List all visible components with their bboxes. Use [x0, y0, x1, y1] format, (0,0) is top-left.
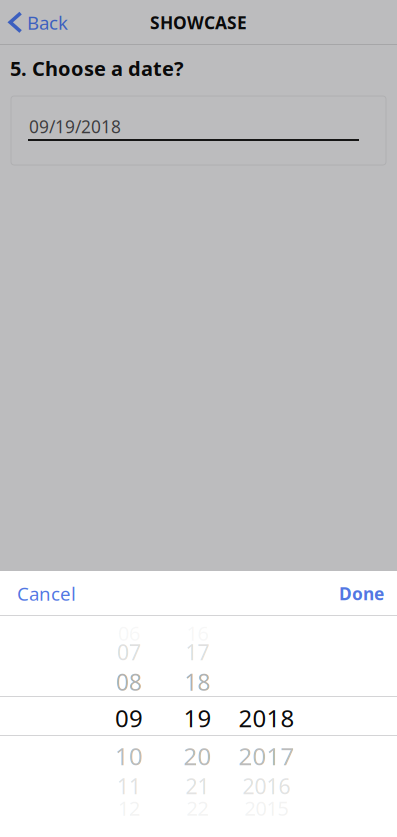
staticText: 16: [186, 620, 208, 646]
button[interactable]: Year: [232, 616, 301, 837]
staticText: 2015: [244, 795, 288, 821]
staticText: Done: [339, 582, 384, 605]
staticText: 18: [184, 667, 210, 697]
staticText: 09: [115, 702, 143, 734]
staticText: 06: [118, 620, 140, 646]
staticText: 08: [116, 667, 142, 697]
staticText: 2018: [238, 702, 294, 734]
staticText: 09/19/2018: [29, 115, 121, 138]
staticText: 21: [185, 772, 209, 800]
staticText: 11: [117, 772, 141, 800]
staticText: 07: [117, 638, 141, 666]
button[interactable]: Month: [95, 616, 163, 837]
button[interactable]: Day: [163, 616, 232, 837]
staticText: 2016: [242, 772, 290, 800]
staticText: 22: [186, 795, 208, 821]
staticText: Back: [27, 10, 68, 35]
button[interactable]: Cancel: [0, 571, 90, 616]
staticText: 12: [118, 795, 140, 821]
staticText: 10: [115, 740, 143, 772]
staticText: SHOWCASE: [150, 11, 247, 34]
button[interactable]: Back: [0, 0, 92, 45]
staticText: 20: [183, 740, 211, 772]
staticText: 19: [183, 702, 211, 734]
staticText: 2017: [238, 740, 294, 772]
button[interactable]: Done: [325, 571, 397, 616]
staticText: 5. Choose a date?: [10, 55, 184, 82]
staticText: 17: [185, 638, 209, 666]
button[interactable]: 09/19/2018: [28, 113, 369, 150]
staticText: Cancel: [17, 581, 76, 606]
